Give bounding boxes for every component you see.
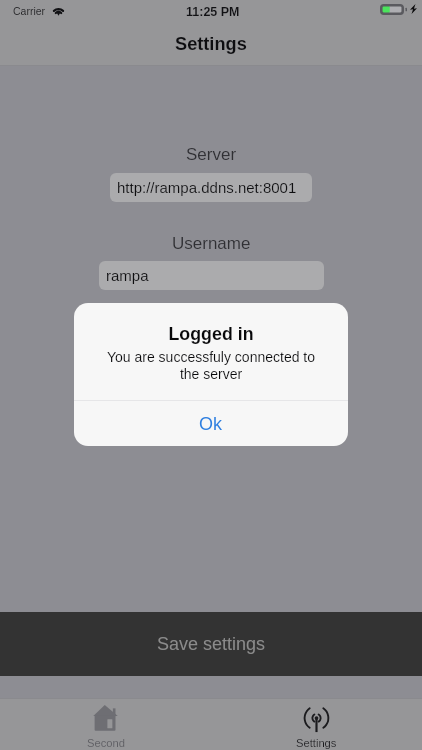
staticText: 11:25 PM [186,5,240,19]
other: Settings tab [304,710,329,733]
button[interactable]: Second tab [0,699,211,750]
button[interactable]: http://rampa.ddns.net:8001 [110,173,312,202]
staticText: Settings [175,34,247,54]
staticText: Server [186,145,237,164]
staticText: http://rampa.ddns.net:8001 [117,179,297,196]
staticText: Second [87,737,125,750]
button[interactable]: Save settings [0,612,422,676]
button[interactable]: rampa [99,261,324,290]
button[interactable]: Settings tab [211,699,422,750]
staticText: rampa [106,267,149,284]
staticText: Username [172,234,251,253]
staticText: Carrier [13,5,46,17]
staticText: Ok [199,414,223,434]
staticText: Save settings [157,634,266,654]
button[interactable]: Ok [74,401,348,446]
staticText: Settings [296,737,337,750]
other: Second tab [93,705,118,731]
staticText: You are successfuly connected to the ser… [96,349,326,382]
staticText: Logged in [74,324,348,344]
